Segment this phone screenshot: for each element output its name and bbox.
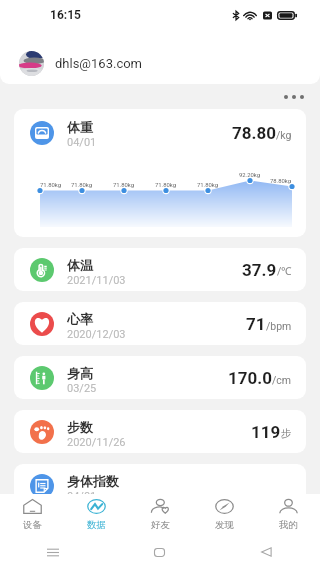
button[interactable]: 步数 [14,410,306,453]
staticText: /bpm [266,320,292,332]
button[interactable]: Home [106,536,213,568]
button[interactable]: Recent apps [0,536,106,568]
staticText: 数据 [87,519,106,531]
staticText: 119 [251,422,281,442]
button[interactable]: Back [213,536,320,568]
button[interactable]: More options [282,91,306,103]
staticText: 步数 [67,419,93,435]
staticText: /kg [276,129,292,141]
staticText: 71 [246,314,266,334]
staticText: 170.0 [228,368,272,388]
staticText: 步 [281,427,292,440]
button[interactable]: 身体指数 [14,464,306,507]
staticText: 16:15 [50,8,81,22]
staticText: dhls@163.com [55,56,143,71]
button[interactable]: 体温 [14,248,306,291]
staticText: /℃ [277,264,292,278]
button[interactable]: 心率 [14,302,306,345]
staticText: 身体指数 [67,473,119,489]
staticText: 2020/12/03 [67,328,126,341]
button[interactable]: 我的 [256,494,320,536]
staticText: /cm [272,374,292,386]
button[interactable]: 身高 [14,356,306,399]
button[interactable]: 好友 [128,494,192,536]
staticText: 03/25 [67,382,97,395]
staticText: 78.80 [232,123,276,143]
button[interactable]: 设备 [0,494,64,536]
staticText: 我的 [279,519,298,531]
staticText: 心率 [67,311,93,327]
staticText: 身高 [67,365,93,381]
button[interactable]: 体重 [14,109,306,237]
staticText: 04/01 [67,136,97,149]
staticText: 2021/11/03 [67,274,126,287]
staticText: 2020/11/26 [67,436,126,449]
staticText: 体温 [67,257,93,273]
staticText: 04/01 [67,490,97,503]
staticText: 发现 [215,519,234,531]
staticText: 体重 [67,119,93,135]
button[interactable]: 发现 [192,494,256,536]
staticText: 好友 [151,519,170,531]
button[interactable]: dhls@163.com [0,50,320,76]
staticText: 37.9 [242,260,277,280]
button[interactable]: 数据 [64,494,128,536]
staticText: 设备 [23,519,42,531]
